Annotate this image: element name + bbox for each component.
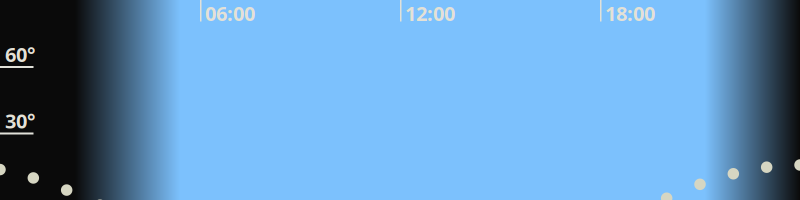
staticText: 60° <box>5 41 35 68</box>
staticText: 12:00 <box>405 0 455 27</box>
staticText: 06:00 <box>205 0 255 27</box>
staticText: 30° <box>5 107 35 134</box>
staticText: 18:00 <box>605 0 655 27</box>
button[interactable]: 24-hour temperature and sun position cha… <box>0 0 800 200</box>
